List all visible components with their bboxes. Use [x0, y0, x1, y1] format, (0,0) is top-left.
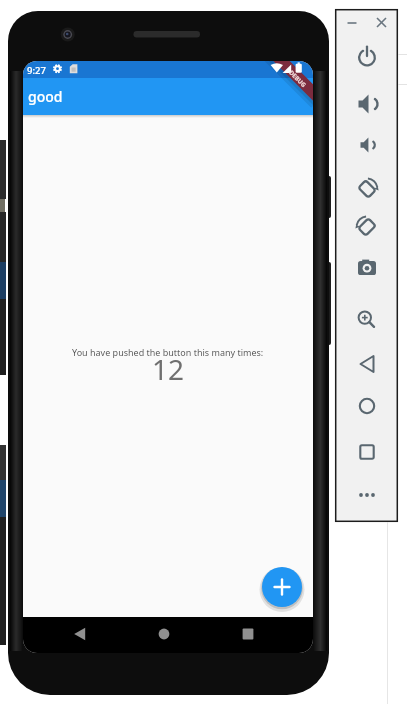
staticText: 12 [152, 350, 185, 388]
button[interactable] [354, 255, 380, 281]
button[interactable] [354, 439, 380, 465]
button[interactable] [354, 44, 380, 70]
button[interactable] [354, 393, 380, 419]
button[interactable] [354, 482, 380, 508]
button[interactable] [354, 351, 380, 377]
staticText: good [28, 87, 63, 106]
button[interactable] [374, 15, 389, 30]
button[interactable] [354, 175, 380, 201]
staticText: 9:27 [27, 64, 46, 77]
button[interactable] [152, 622, 176, 646]
staticText: You have pushed the button this many tim… [72, 346, 264, 358]
button[interactable] [354, 213, 380, 239]
button[interactable] [354, 307, 380, 333]
button[interactable] [262, 567, 302, 607]
button[interactable] [345, 16, 359, 30]
staticText: DEBUG [287, 69, 308, 89]
button[interactable] [236, 622, 260, 646]
button[interactable] [68, 622, 92, 646]
button[interactable] [354, 91, 380, 117]
button[interactable] [354, 132, 380, 158]
